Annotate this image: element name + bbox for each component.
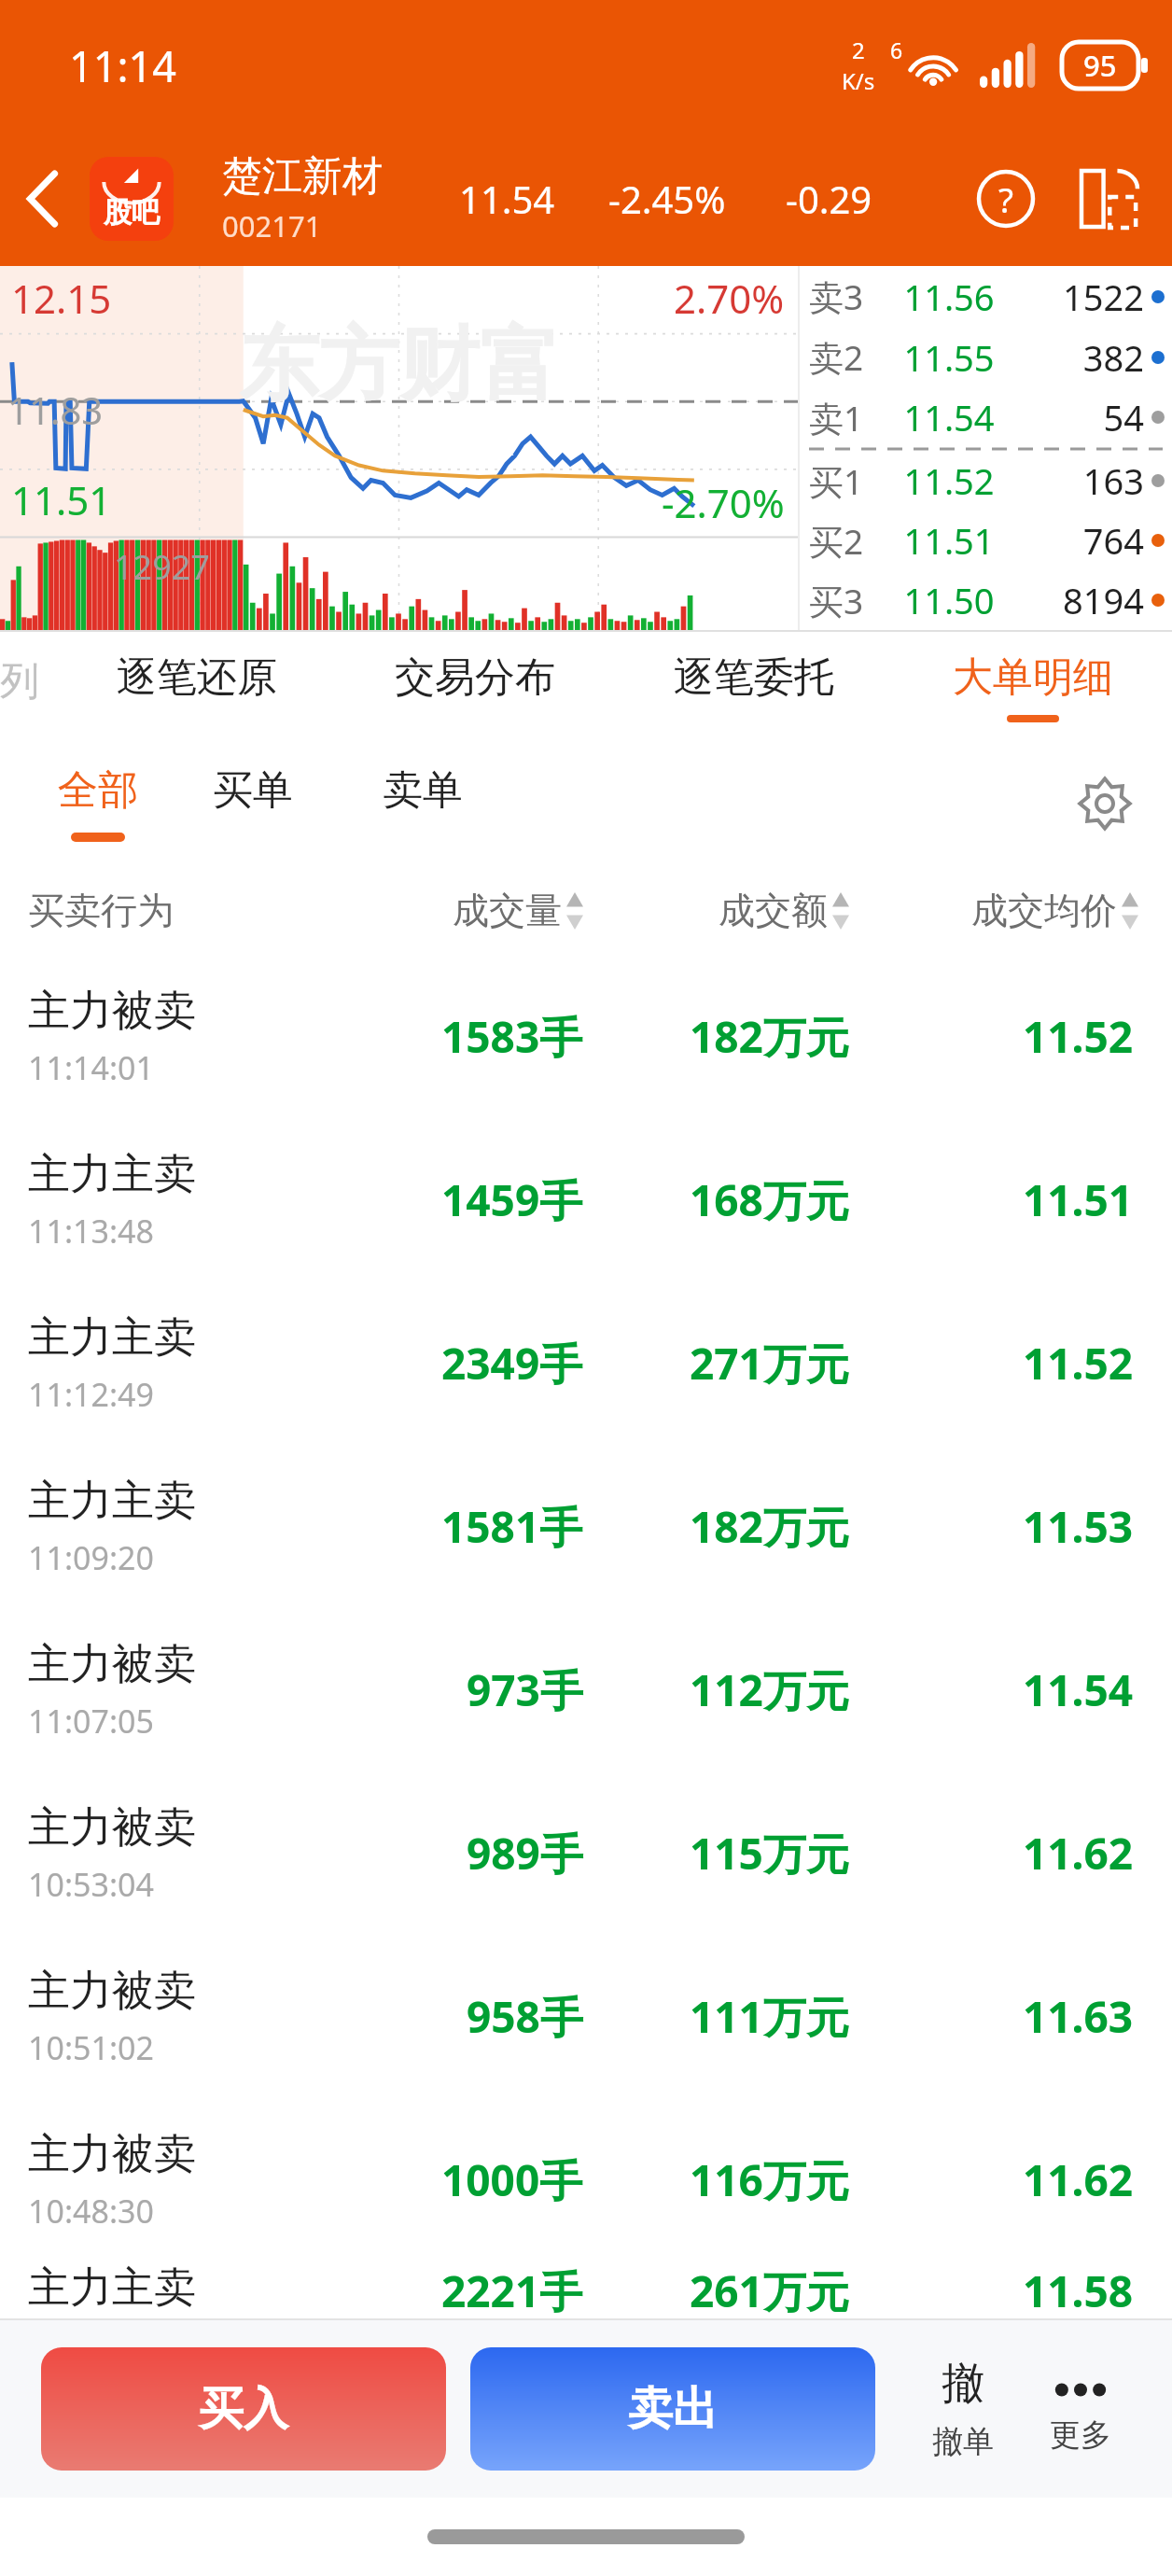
staticText: 382 xyxy=(1034,333,1144,382)
staticText: 卖2 xyxy=(809,333,864,381)
staticText: 8194 xyxy=(1034,576,1144,624)
staticText: 12927 xyxy=(114,544,210,590)
staticText: 成交额 xyxy=(719,888,828,933)
staticText: 1522 xyxy=(1034,273,1144,321)
button[interactable]: Back xyxy=(0,156,86,242)
staticText: 11:13:48 xyxy=(28,1210,154,1253)
staticText: 逐笔委托 xyxy=(674,652,834,703)
staticText: 买3 xyxy=(809,577,864,624)
staticText: 111万元 xyxy=(690,1987,849,2046)
staticText: 卖1 xyxy=(809,394,864,441)
button[interactable]: 更多 xyxy=(1030,2320,1131,2498)
staticText: 54 xyxy=(1034,393,1144,441)
staticText: 交易分布 xyxy=(395,652,555,703)
button[interactable]: 成交额 xyxy=(719,888,849,933)
staticText: 更多 xyxy=(1050,2415,1111,2455)
staticText: ? xyxy=(998,175,1014,222)
staticText: 楚江新材 xyxy=(222,151,383,202)
staticText: 11.50 xyxy=(864,576,1034,624)
staticText: 2221手 xyxy=(441,2261,583,2318)
staticText: 撤 xyxy=(942,2357,984,2411)
button[interactable]: 大单明细 xyxy=(893,632,1172,742)
staticText: 买2 xyxy=(809,517,864,565)
staticText: 112万元 xyxy=(690,1660,849,1719)
staticText: 主力主卖 xyxy=(28,2261,196,2315)
staticText: 10:51:02 xyxy=(28,2026,154,2069)
staticText: 11:09:20 xyxy=(28,1536,154,1579)
staticText: 卖3 xyxy=(809,273,864,320)
button[interactable]: 撤 xyxy=(913,2320,1013,2498)
button[interactable]: 主力被卖 xyxy=(0,1935,1172,2098)
staticText: 764 xyxy=(1034,516,1144,565)
button[interactable]: Help xyxy=(963,156,1049,242)
button[interactable]: 主力主卖 xyxy=(0,2261,1172,2318)
staticText: -2.70% xyxy=(662,476,785,529)
staticText: 1459手 xyxy=(441,1170,583,1229)
staticText: 主力主卖 xyxy=(28,1148,196,1201)
staticText: 11.51 xyxy=(1023,1170,1134,1229)
button[interactable]: 交易分布 xyxy=(336,632,614,742)
staticText: 买入 xyxy=(199,2381,288,2437)
staticText: 主力被卖 xyxy=(28,2128,196,2181)
staticText: 主力被卖 xyxy=(28,1801,196,1855)
button[interactable]: 主力被卖 xyxy=(0,1771,1172,1935)
staticText: 撤单 xyxy=(932,2422,994,2461)
button[interactable]: 股吧 xyxy=(90,157,174,241)
button[interactable]: 买入 xyxy=(41,2347,446,2471)
button[interactable]: 全部 xyxy=(28,742,168,865)
staticText: 列 xyxy=(0,657,39,707)
staticText: 989手 xyxy=(467,1824,583,1883)
staticText: 11.51 xyxy=(864,516,1034,565)
button[interactable]: 主力被卖 xyxy=(0,955,1172,1118)
button[interactable]: 逐笔还原 xyxy=(58,632,336,742)
staticText: 成交量 xyxy=(453,888,562,933)
button[interactable]: 主力主卖 xyxy=(0,1118,1172,1281)
staticText: 95 xyxy=(1083,46,1117,85)
staticText: 2 xyxy=(852,35,865,65)
staticText: 11.54 xyxy=(459,174,555,224)
button[interactable]: 主力主卖 xyxy=(0,1281,1172,1445)
staticText: 182万元 xyxy=(690,1007,849,1066)
staticText: 11.56 xyxy=(864,273,1034,321)
staticText: 2.70% xyxy=(674,272,785,325)
button[interactable]: 主力被卖 xyxy=(0,2098,1172,2261)
button[interactable]: 卖出 xyxy=(470,2347,875,2471)
staticText: 逐笔还原 xyxy=(117,652,277,703)
button[interactable]: Settings xyxy=(1062,761,1148,847)
staticText: 主力主卖 xyxy=(28,1311,196,1365)
staticText: 002171 xyxy=(222,206,322,245)
staticText: 11.52 xyxy=(1023,1334,1134,1393)
staticText: 全部 xyxy=(58,765,138,816)
staticText: 1000手 xyxy=(441,2150,583,2209)
button[interactable]: 成交量 xyxy=(453,888,583,933)
button[interactable]: 买单 xyxy=(168,742,338,865)
staticText: 115万元 xyxy=(690,1824,849,1883)
staticText: 6 xyxy=(890,35,903,64)
staticText: 11.54 xyxy=(864,393,1034,441)
staticText: 主力被卖 xyxy=(28,985,196,1038)
button[interactable]: 卖3 xyxy=(800,266,1172,630)
staticText: 271万元 xyxy=(690,1334,849,1393)
button[interactable]: 主力被卖 xyxy=(0,1608,1172,1771)
button[interactable]: Landscape xyxy=(1066,156,1151,242)
staticText: 261万元 xyxy=(690,2261,849,2318)
staticText: 11.62 xyxy=(1023,2150,1134,2209)
staticText: 11.83 xyxy=(7,385,104,435)
button[interactable]: 主力主卖 xyxy=(0,1445,1172,1608)
staticText: 成交均价 xyxy=(971,888,1117,933)
staticText: 2349手 xyxy=(441,1334,583,1393)
staticText: 东方财富 xyxy=(239,315,560,415)
button[interactable]: 成交均价 xyxy=(971,888,1138,933)
button[interactable]: 卖单 xyxy=(338,742,508,865)
staticText: 11.51 xyxy=(11,473,112,526)
staticText: 卖出 xyxy=(628,2381,718,2437)
staticText: 10:53:04 xyxy=(28,1863,154,1906)
staticText: 11:07:05 xyxy=(28,1700,154,1743)
staticText: 11.63 xyxy=(1023,1987,1134,2046)
button[interactable]: 逐笔委托 xyxy=(614,632,893,742)
staticText: -0.29 xyxy=(786,174,872,224)
staticText: 11.53 xyxy=(1023,1497,1134,1556)
staticText: 买卖行为 xyxy=(28,888,174,933)
button[interactable]: 东方财富 xyxy=(0,266,798,630)
staticText: 973手 xyxy=(467,1660,583,1719)
